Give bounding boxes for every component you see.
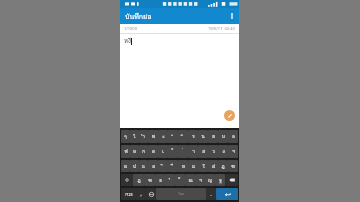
staticText: ผ: [124, 163, 127, 170]
button[interactable]: Edit note: [224, 110, 235, 121]
staticText: ณ: [188, 177, 193, 184]
button[interactable]: ท: [178, 160, 188, 172]
button[interactable]: ่: [178, 145, 188, 158]
button[interactable]: ห: [130, 145, 139, 158]
button[interactable]: ํ: [165, 174, 175, 186]
button[interactable]: ร: [188, 130, 198, 143]
staticText: ธ: [159, 177, 162, 184]
staticText: ย: [212, 133, 215, 140]
staticText: ร: [192, 133, 195, 140]
staticText: ฯ: [199, 177, 202, 184]
staticText: บันทึกย่อ: [125, 11, 152, 22]
button[interactable]: ด: [148, 145, 158, 158]
staticText: ฯ: [232, 148, 235, 155]
button[interactable]: พ: [148, 130, 158, 143]
button[interactable]: Enter: [216, 188, 238, 200]
button[interactable]: ื: [168, 160, 178, 172]
button[interactable]: ฎ: [218, 160, 228, 172]
staticText: ฟ: [124, 148, 128, 155]
button[interactable]: ญ: [205, 174, 215, 186]
staticText: ง: [222, 148, 225, 155]
staticText: ล: [232, 133, 235, 140]
staticText: ม: [192, 163, 195, 170]
button[interactable]: น: [198, 130, 208, 143]
button[interactable]: ธ: [155, 174, 165, 186]
button[interactable]: ง: [218, 145, 228, 158]
staticText: 19/5/17 02:43: [208, 26, 235, 31]
button[interactable]: Change keyboard: [146, 188, 156, 200]
staticText: ำ: [142, 133, 145, 140]
staticText: ใ: [202, 163, 205, 170]
button[interactable]: ย: [208, 130, 218, 143]
button[interactable]: ฑ: [228, 160, 238, 172]
staticText: เ: [162, 148, 164, 155]
button[interactable]: ใ: [198, 160, 208, 172]
staticText: า: [192, 148, 195, 155]
button[interactable]: ้: [168, 145, 178, 158]
staticText: ญ: [208, 177, 212, 184]
staticText: ห: [133, 148, 136, 155]
button[interactable]: ,: [136, 188, 146, 200]
button[interactable]: Backspace: [225, 174, 238, 186]
staticText: ฑ: [148, 177, 152, 184]
button[interactable]: อ: [148, 160, 158, 172]
button[interactable]: ก: [139, 145, 148, 158]
button[interactable]: ิ: [158, 160, 168, 172]
button[interactable]: ำ: [139, 130, 148, 143]
staticText: ฑ: [231, 163, 235, 170]
staticText: พ: [152, 133, 155, 140]
button[interactable]: ผ: [121, 160, 130, 172]
button[interactable]: .: [206, 188, 216, 200]
staticText: ด: [152, 148, 155, 155]
staticText: ๆ: [124, 133, 127, 140]
button[interactable]: ส: [198, 145, 208, 158]
button[interactable]: Space: [156, 188, 206, 200]
button[interactable]: ไ: [130, 130, 139, 143]
staticText: หงี: [124, 36, 131, 46]
button[interactable]: แ: [139, 160, 148, 172]
staticText: แ: [142, 163, 145, 170]
staticText: ,: [140, 191, 142, 197]
staticText: ส: [202, 148, 205, 155]
button[interactable]: ะ: [158, 130, 168, 143]
button[interactable]: ฯ: [228, 145, 238, 158]
button[interactable]: ฯ: [195, 174, 205, 186]
button[interactable]: ๆ: [121, 130, 130, 143]
button[interactable]: ว: [208, 145, 218, 158]
button[interactable]: ฎ: [133, 174, 144, 186]
staticText: ะ: [162, 133, 165, 140]
button[interactable]: เ: [158, 145, 168, 158]
button[interactable]: ฝ: [208, 160, 218, 172]
staticText: ?123: [125, 192, 133, 197]
staticText: ท: [182, 163, 185, 170]
button[interactable]: บ: [218, 130, 228, 143]
button[interactable]: ๊: [175, 174, 185, 186]
button[interactable]: ณ: [185, 174, 195, 186]
staticText: น: [201, 133, 205, 140]
staticText: ฎ: [137, 177, 141, 184]
staticText: อ: [152, 163, 155, 170]
staticText: ฐ: [219, 177, 222, 184]
button[interactable]: Add: [225, 136, 234, 145]
staticText: ป: [133, 163, 136, 170]
button[interactable]: า: [188, 145, 198, 158]
staticText: ฎ: [221, 163, 225, 170]
staticText: บ: [222, 133, 225, 140]
staticText: 1/1000: [124, 26, 137, 31]
button[interactable]: ?123: [121, 188, 136, 200]
button[interactable]: ฑ: [144, 174, 155, 186]
staticText: ฝ: [212, 163, 215, 170]
button[interactable]: ฐ: [215, 174, 225, 186]
button[interactable]: ป: [130, 160, 139, 172]
button[interactable]: ล: [228, 130, 238, 143]
staticText: ไ: [133, 133, 136, 140]
button[interactable]: ฟ: [121, 145, 130, 158]
button[interactable]: ี: [178, 130, 188, 143]
staticText: .: [210, 191, 212, 197]
staticText: ก: [142, 148, 145, 155]
button[interactable]: More options: [225, 9, 239, 23]
staticText: ไทย: [178, 191, 185, 197]
button[interactable]: ั: [168, 130, 178, 143]
button[interactable]: ม: [188, 160, 198, 172]
button[interactable]: Shift: [121, 174, 133, 186]
